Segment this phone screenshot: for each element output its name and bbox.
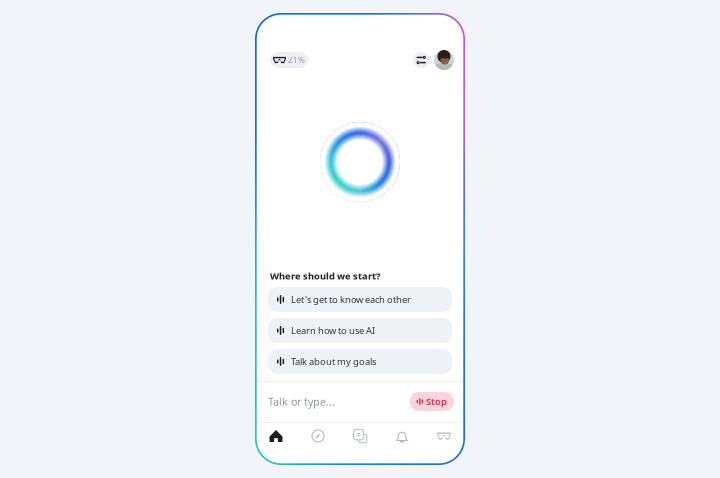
button[interactable]: Home — [255, 422, 297, 465]
button[interactable]: Notifications — [381, 422, 423, 465]
staticText: Talk about my goals — [291, 355, 376, 368]
staticText: 21% — [288, 55, 305, 65]
button[interactable]: Stop — [410, 392, 454, 411]
staticText: Stop — [426, 395, 447, 408]
button[interactable]: Let's get to know each other — [268, 287, 452, 312]
button[interactable]: Settings — [413, 52, 429, 68]
staticText: Talk or type... — [268, 394, 335, 409]
button[interactable]: Glasses — [423, 422, 465, 465]
button[interactable]: 21% — [270, 52, 308, 68]
button[interactable]: Learn how to use AI — [268, 318, 452, 343]
staticText: Learn how to use AI — [291, 324, 375, 337]
button[interactable]: Profile — [434, 50, 454, 70]
button[interactable]: Chats — [339, 422, 381, 465]
staticText: Where should we start? — [270, 270, 380, 282]
button[interactable]: Discover — [297, 422, 339, 465]
staticText: Let's get to know each other — [291, 293, 411, 306]
button[interactable]: Talk about my goals — [268, 349, 452, 374]
